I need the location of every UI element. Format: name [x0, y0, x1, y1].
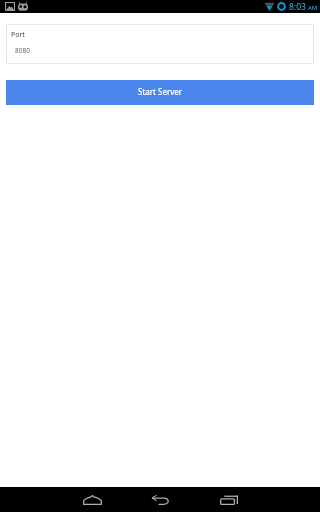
button[interactable]: Port	[6, 24, 314, 64]
button[interactable]: Recent apps	[205, 487, 253, 512]
button[interactable]: Home	[68, 487, 116, 512]
staticText: Port	[11, 30, 25, 40]
staticText: Start Server	[138, 86, 183, 97]
staticText: AM	[308, 4, 318, 12]
staticText: 8:03	[289, 1, 306, 13]
staticText: 8080	[15, 46, 30, 55]
button[interactable]: Start Server	[6, 80, 314, 105]
button[interactable]: Back	[136, 487, 184, 512]
